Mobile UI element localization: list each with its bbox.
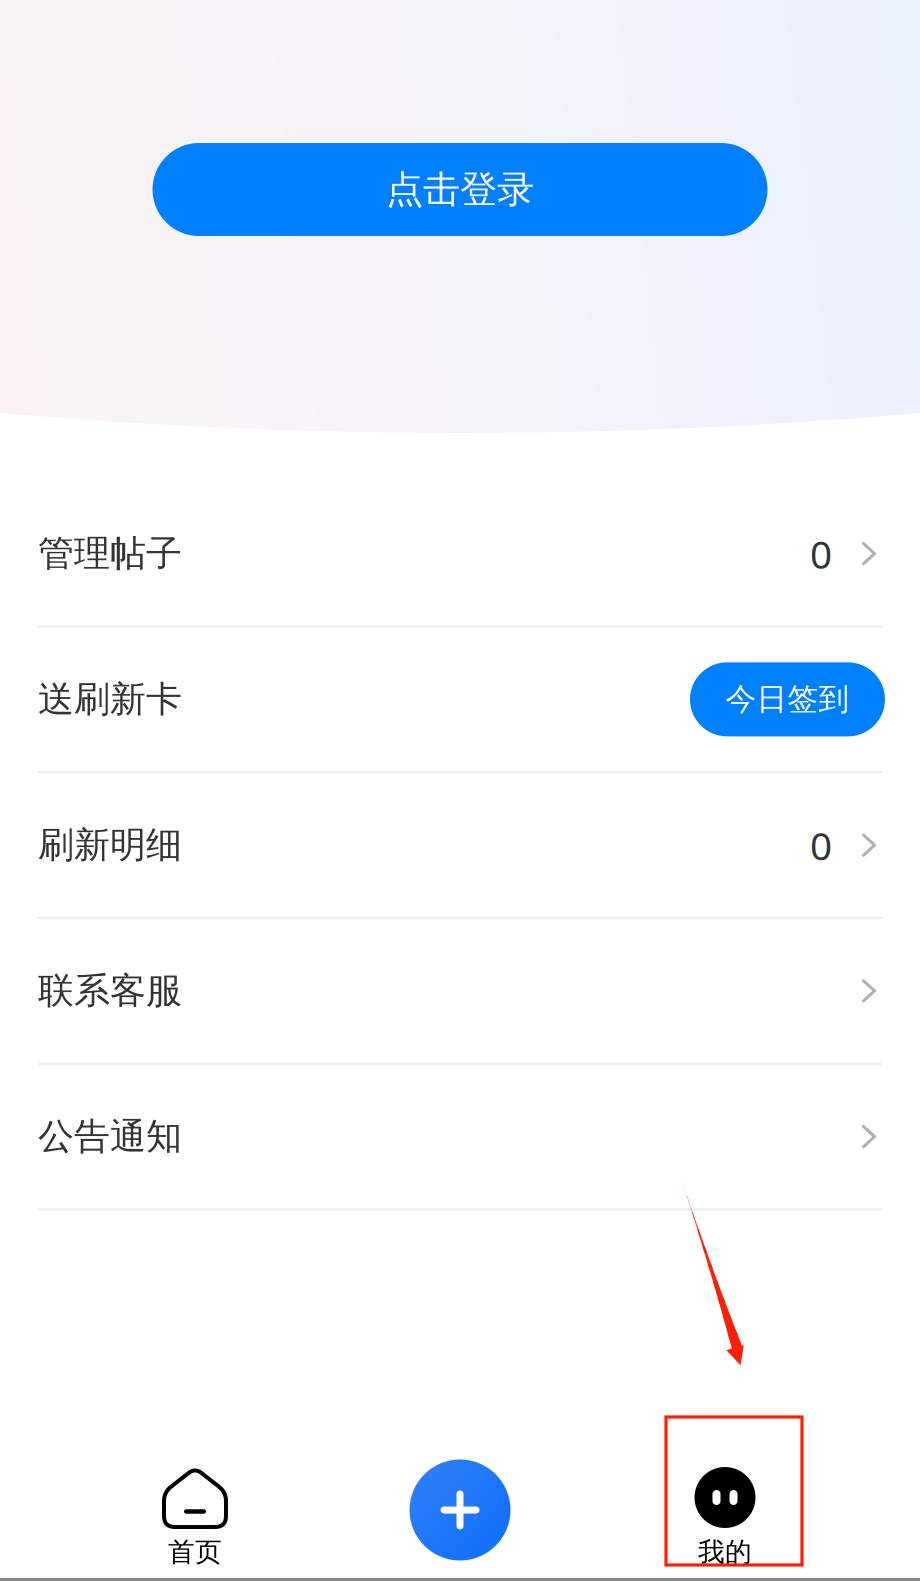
staticText: 我的 bbox=[698, 1536, 752, 1568]
staticText: 刷新明细 bbox=[38, 823, 182, 867]
staticText: 今日签到 bbox=[725, 680, 849, 718]
staticText: 首页 bbox=[168, 1536, 222, 1568]
button[interactable]: 联系客服 bbox=[0, 919, 920, 1065]
button[interactable]: 公告通知 bbox=[0, 1065, 920, 1211]
button[interactable]: 刷新明细 bbox=[0, 773, 920, 919]
button[interactable]: 管理帖子 bbox=[0, 482, 920, 628]
button[interactable]: 点击登录 bbox=[152, 143, 767, 236]
staticText: 0 bbox=[810, 528, 832, 579]
button[interactable]: 我的 bbox=[635, 1466, 815, 1568]
staticText: 送刷新卡 bbox=[38, 677, 182, 721]
staticText: 联系客服 bbox=[38, 969, 182, 1013]
staticText: 0 bbox=[810, 819, 832, 871]
button[interactable]: 发布 bbox=[395, 1445, 525, 1575]
staticText: 点击登录 bbox=[386, 167, 534, 212]
staticText: 公告通知 bbox=[38, 1114, 182, 1159]
button[interactable]: 送刷新卡 bbox=[0, 628, 920, 774]
staticText: 管理帖子 bbox=[38, 531, 182, 576]
button[interactable]: 首页 bbox=[105, 1466, 285, 1568]
